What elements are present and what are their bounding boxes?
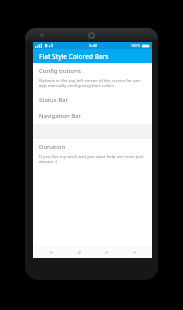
button[interactable]: Menu (125, 246, 143, 258)
staticText: Donation (39, 143, 66, 151)
button[interactable]: Flat Style Colored Bars (33, 49, 152, 63)
button[interactable]: Donation (33, 139, 152, 168)
button[interactable]: Navigation Bar (33, 108, 152, 124)
button[interactable]: Config buttons (33, 63, 152, 92)
staticText: If you like my work and you want help me… (39, 153, 147, 164)
button[interactable]: Status Bar (33, 92, 152, 108)
staticText: Status Bar (39, 96, 68, 104)
staticText: Navigation Bar (39, 112, 81, 120)
button[interactable]: Back (97, 246, 115, 258)
staticText: 3:48 (89, 43, 97, 48)
button[interactable]: Home (70, 246, 88, 258)
staticText: Flat Style Colored Bars (39, 52, 109, 61)
staticText: 100% (131, 43, 141, 48)
staticText: Config buttons (39, 67, 81, 75)
staticText: Buttons in the top-left corner of the sc… (39, 77, 147, 88)
button[interactable]: Recent apps (42, 246, 60, 258)
